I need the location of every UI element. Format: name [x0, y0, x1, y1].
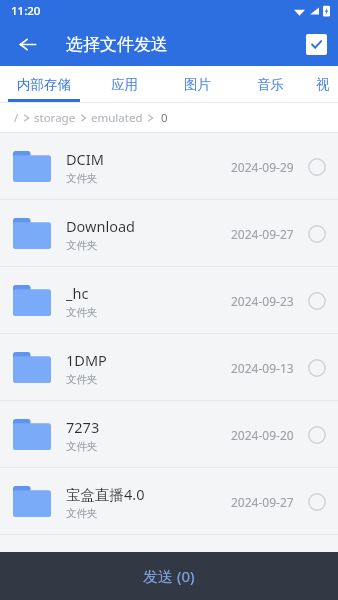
button[interactable]: Select 1DMP: [307, 358, 327, 378]
staticText: 文件夹: [66, 373, 98, 386]
button[interactable]: 酷狗铃声: [0, 535, 338, 600]
staticText: 2024-09-27: [231, 226, 294, 242]
staticText: Download: [66, 216, 135, 236]
staticText: 视: [316, 76, 330, 93]
staticText: 11:20: [11, 3, 41, 19]
button[interactable]: /: [14, 110, 168, 126]
button[interactable]: 宝盒直播4.0: [0, 468, 338, 535]
staticText: 酷狗铃声: [66, 551, 124, 569]
staticText: 2024-09-29: [231, 159, 294, 175]
button[interactable]: DCIM: [0, 133, 338, 200]
staticText: 文件夹: [66, 507, 98, 520]
staticText: 文件夹: [66, 239, 98, 252]
button[interactable]: _hc: [0, 267, 338, 334]
staticText: 内部存储: [17, 76, 71, 93]
button[interactable]: Select 宝盒直播4.0: [307, 492, 327, 512]
staticText: 发送 (0): [143, 566, 195, 586]
button[interactable]: Select all: [306, 34, 327, 55]
staticText: DCIM: [66, 149, 104, 169]
staticText: emulated: [91, 110, 143, 126]
button[interactable]: 音乐: [234, 66, 307, 103]
staticText: 宝盒直播4.0: [66, 484, 145, 504]
button[interactable]: 视: [307, 66, 338, 103]
staticText: 7273: [66, 417, 100, 437]
button[interactable]: 应用: [88, 66, 161, 103]
staticText: 图片: [184, 76, 211, 93]
button[interactable]: Select DCIM: [307, 157, 327, 177]
button[interactable]: Select 7273: [307, 425, 327, 445]
staticText: _hc: [66, 283, 89, 303]
button[interactable]: 图片: [161, 66, 234, 103]
staticText: 音乐: [257, 76, 284, 93]
button[interactable]: 1DMP: [0, 334, 338, 401]
staticText: 2024-09-27: [231, 494, 294, 510]
staticText: 文件夹: [66, 172, 98, 185]
staticText: 2024-09-20: [231, 427, 294, 443]
button[interactable]: Select _hc: [307, 291, 327, 311]
button[interactable]: 7273: [0, 401, 338, 468]
button[interactable]: 内部存储: [0, 66, 88, 103]
staticText: 2024-09-13: [231, 360, 294, 376]
staticText: 文件夹: [66, 306, 98, 319]
staticText: /: [14, 110, 19, 126]
staticText: 0: [161, 110, 168, 126]
staticText: 应用: [111, 76, 138, 93]
button[interactable]: Download: [0, 200, 338, 267]
staticText: storage: [34, 110, 76, 126]
button[interactable]: 发送 (0): [0, 552, 338, 600]
button[interactable]: Back: [10, 27, 44, 61]
staticText: 2024-09-23: [231, 293, 294, 309]
staticText: 选择文件发送: [66, 34, 168, 55]
staticText: 1DMP: [66, 350, 107, 370]
staticText: 文件夹: [66, 440, 98, 453]
button[interactable]: Select Download: [307, 224, 327, 244]
